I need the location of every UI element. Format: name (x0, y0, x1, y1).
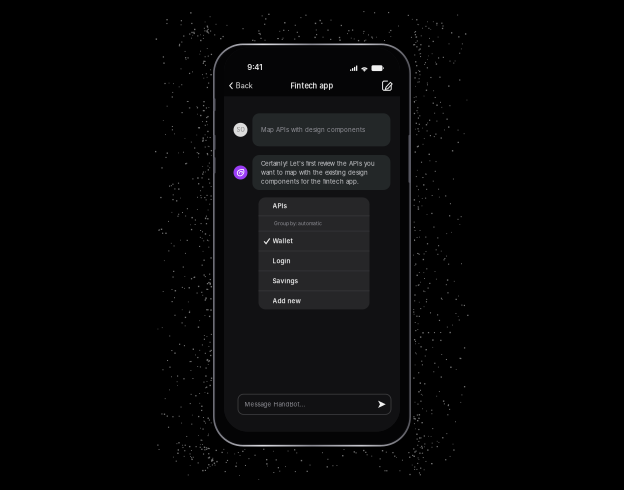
staticText: Map APIs with design components (261, 126, 365, 133)
staticText: Message HandBot... (245, 401, 306, 408)
button[interactable]: Wallet (258, 231, 369, 251)
button[interactable]: Back (229, 75, 263, 96)
staticText: Savings (272, 277, 298, 285)
staticText: Group by: automatic (274, 220, 322, 226)
staticText: SO (236, 126, 244, 133)
staticText: Certainly! Let's first review the APIs y… (261, 160, 375, 185)
staticText: Login (272, 257, 290, 265)
button[interactable]: Savings (258, 271, 369, 291)
staticText: Back (236, 81, 253, 90)
staticText: APIs (272, 202, 287, 210)
button[interactable]: Compose (379, 75, 395, 96)
staticText: Add new (272, 297, 300, 305)
button[interactable]: Add new (258, 291, 369, 311)
button[interactable]: Login (258, 251, 369, 271)
staticText: Fintech app (290, 81, 333, 90)
staticText: Wallet (272, 237, 292, 245)
button[interactable]: Message HandBot... (238, 394, 391, 414)
staticText: 9:41 (247, 62, 262, 72)
